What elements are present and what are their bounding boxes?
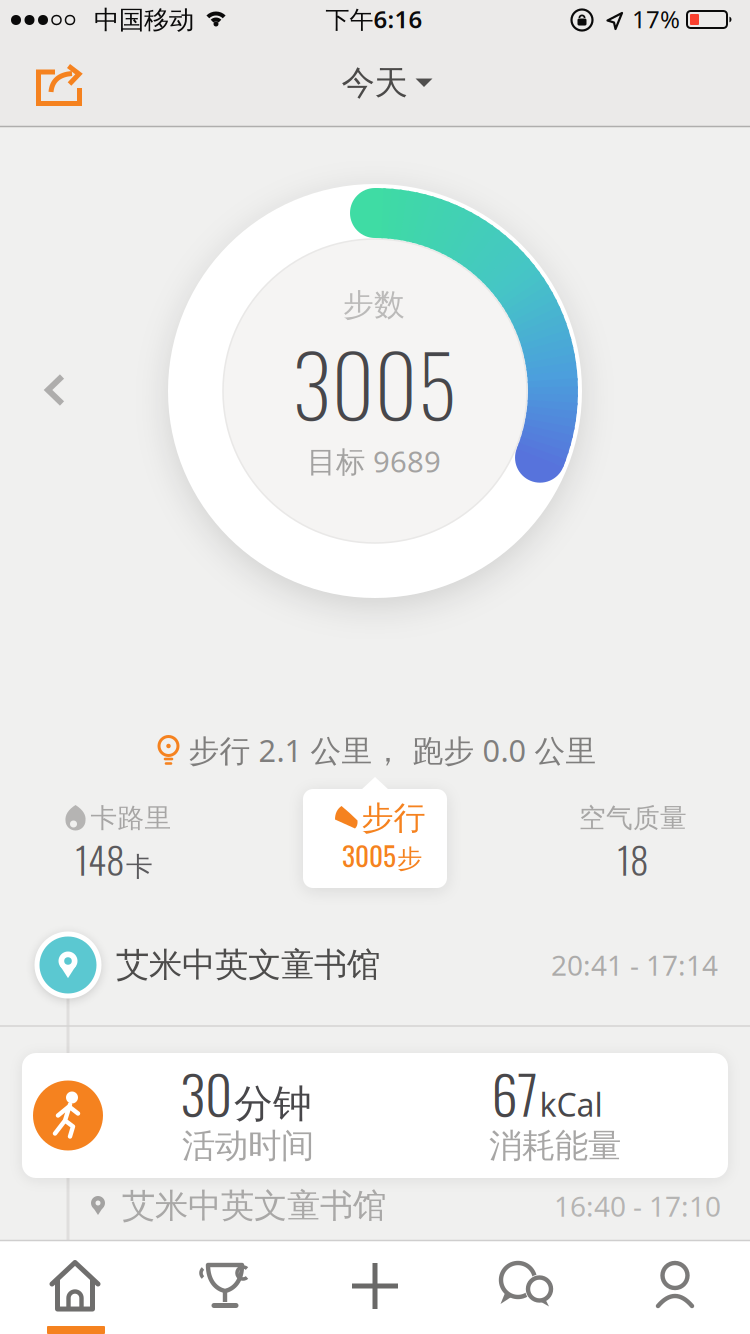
staticText: 16:40 - 17:10 <box>554 1187 721 1225</box>
staticText: 18 <box>617 831 649 887</box>
button[interactable] <box>41 369 69 410</box>
staticText: 3005 <box>291 322 456 444</box>
staticText: 步数 <box>343 286 405 324</box>
staticText: 空气质量 <box>579 802 687 834</box>
staticText: kCal <box>539 1083 602 1126</box>
staticText: 30 <box>180 1054 232 1132</box>
button[interactable] <box>36 63 84 107</box>
staticText: 中国移动 <box>94 4 194 35</box>
staticText: 活动时间 <box>182 1125 314 1166</box>
staticText: 3005 <box>342 835 396 875</box>
staticText: 步 <box>397 843 422 874</box>
staticText: 17% <box>632 3 680 35</box>
staticText: 消耗能量 <box>489 1125 621 1166</box>
staticText: 下午6:16 <box>325 3 422 35</box>
staticText: 67 <box>491 1054 537 1132</box>
staticText: 卡路里 <box>90 802 171 834</box>
button[interactable]: 30 <box>22 1053 728 1178</box>
staticText: 艾米中英文童书馆 <box>116 944 380 985</box>
staticText: 卡 <box>126 851 153 883</box>
button[interactable] <box>605 1241 745 1331</box>
button[interactable] <box>455 1241 595 1331</box>
staticText: 分钟 <box>234 1080 312 1128</box>
staticText: 今天 <box>341 62 407 103</box>
staticText: 艾米中英文童书馆 <box>122 1185 386 1226</box>
button[interactable] <box>155 1241 295 1331</box>
staticText: 步行 <box>361 798 425 838</box>
button[interactable]: 艾米中英文童书馆 <box>86 1176 750 1236</box>
button[interactable]: 艾米中英文童书馆 <box>0 905 750 1025</box>
button[interactable] <box>5 1241 145 1331</box>
staticText: 148 <box>75 831 125 887</box>
button[interactable] <box>305 1241 445 1331</box>
staticText: 20:41 - 17:14 <box>551 946 718 984</box>
staticText: 目标 9689 <box>307 441 441 480</box>
button[interactable]: 步行 <box>303 777 447 888</box>
button[interactable]: 今天 <box>341 62 432 103</box>
staticText: 步行 2.1 公里， 跑步 0.0 公里 <box>188 730 596 770</box>
